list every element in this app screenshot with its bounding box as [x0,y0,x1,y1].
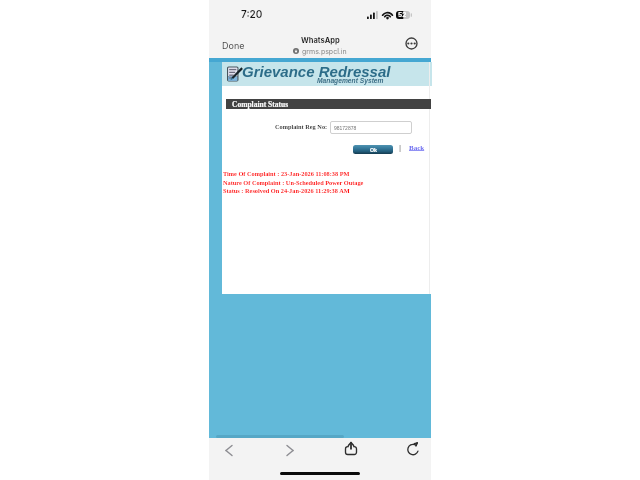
staticText: Management System [317,77,384,84]
button[interactable]: Back [219,442,239,458]
staticText: Done [222,40,245,51]
staticText: Nature Of Complaint : Un-Scheduled Power… [223,179,364,186]
button[interactable]: Reload [401,438,425,458]
button[interactable]: Done [218,37,249,54]
staticText: Complaint Status [232,100,289,108]
staticText: Grievance Redressal [242,63,391,80]
button[interactable]: More options [405,37,418,50]
button[interactable]: Ok [353,145,393,154]
button[interactable]: Forward [280,442,300,458]
button[interactable]: Back [409,144,425,152]
staticText: Status : Resolved On 24-Jan-2026 11:29:3… [223,187,350,194]
staticText: Ok [370,147,377,153]
staticText: 52 [398,11,407,19]
staticText: Back [409,144,425,152]
button[interactable]: 98172878 [330,121,412,134]
staticText: 98172878 [334,125,357,131]
staticText: Time Of Complaint : 23-Jan-2026 11:08:38… [223,170,350,177]
button[interactable]: Share [339,438,363,458]
staticText: WhatsApp [301,36,340,45]
staticText: grms.pspcl.in [302,47,347,55]
staticText: 7:20 [241,8,263,20]
staticText: Complaint Reg No: [275,123,328,130]
staticText: | [399,143,402,152]
